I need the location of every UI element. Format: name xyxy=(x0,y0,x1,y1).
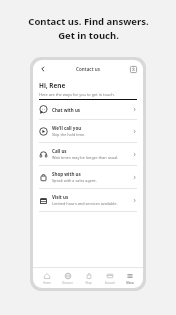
button[interactable]: Back xyxy=(37,63,49,75)
button[interactable]: We'll call you xyxy=(33,120,143,142)
button[interactable]: Account xyxy=(99,268,120,288)
staticText: We'll call you xyxy=(52,125,82,131)
staticText: Shop with us xyxy=(52,171,81,177)
staticText: Discover xyxy=(62,281,73,285)
staticText: Home xyxy=(43,281,51,285)
staticText: Account xyxy=(105,281,115,285)
button[interactable]: Visit us xyxy=(33,189,143,211)
staticText: Chat with us xyxy=(52,107,81,113)
staticText: Wait times may be longer than usual. xyxy=(52,155,119,160)
staticText: Here are the ways for you to get in touc… xyxy=(39,92,115,97)
button[interactable]: Menu xyxy=(120,268,140,288)
staticText: Get in touch. xyxy=(58,29,119,42)
staticText: Call us xyxy=(52,148,67,154)
button[interactable]: Account xyxy=(127,63,139,75)
staticText: Skip the hold time. xyxy=(52,132,86,137)
button[interactable]: Shop with us xyxy=(33,166,143,188)
button[interactable]: Home xyxy=(36,268,57,288)
staticText: Speak with a sales agent. xyxy=(52,178,97,183)
staticText: Visit us xyxy=(52,194,69,200)
button[interactable]: Chat with us xyxy=(33,100,143,119)
staticText: Contact us. Find answers. xyxy=(28,15,149,28)
button[interactable]: Call us xyxy=(33,143,143,165)
staticText: Contact us xyxy=(76,66,100,72)
staticText: Menu xyxy=(126,281,134,285)
staticText: Shop xyxy=(85,281,92,285)
button[interactable]: Discover xyxy=(57,268,78,288)
button[interactable]: Shop xyxy=(78,268,99,288)
staticText: Hi, Rene xyxy=(39,81,66,90)
staticText: Limited hours and services available. xyxy=(52,201,118,206)
